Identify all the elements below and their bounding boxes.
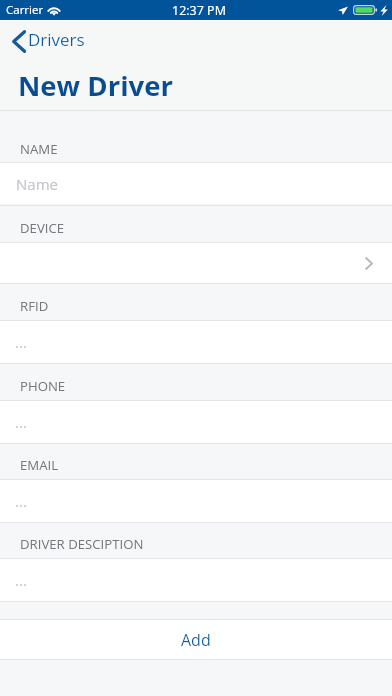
staticText: RFID (20, 297, 49, 315)
staticText: ... (15, 412, 27, 432)
staticText: NAME (20, 140, 58, 158)
staticText: DEVICE (20, 219, 65, 237)
staticText: EMAIL (20, 456, 59, 474)
staticText: 12:37 PM (172, 2, 226, 19)
staticText: ... (15, 570, 27, 590)
staticText: Name (16, 174, 58, 194)
staticText: New Driver (18, 67, 173, 104)
button[interactable]: Name (0, 163, 392, 204)
staticText: ... (15, 491, 27, 511)
button[interactable]: Add (0, 620, 392, 659)
staticText: Drivers (28, 28, 85, 51)
staticText: DRIVER DESCIPTION (20, 535, 144, 553)
button[interactable]: Select device (0, 243, 392, 284)
button[interactable]: Drivers (12, 30, 85, 53)
staticText: Carrier (6, 2, 44, 18)
staticText: ... (15, 332, 27, 352)
staticText: Add (181, 629, 211, 651)
staticText: PHONE (20, 377, 66, 395)
